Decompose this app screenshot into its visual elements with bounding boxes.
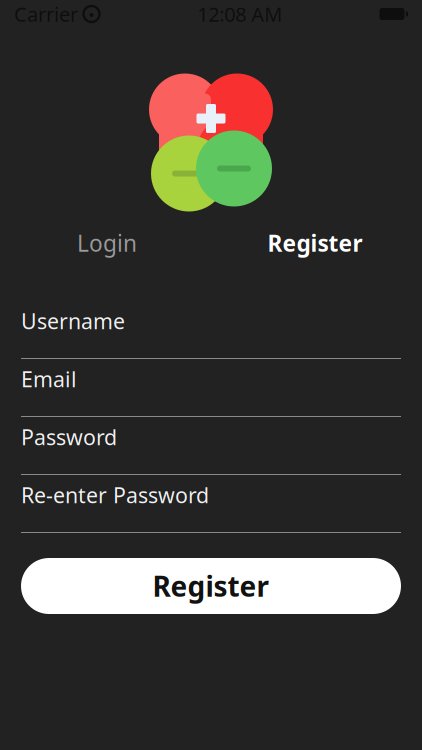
- staticText: Carrier: [14, 1, 78, 27]
- staticText: 12:08 AM: [197, 1, 282, 27]
- button[interactable]: Login: [37, 223, 177, 263]
- staticText: Login: [77, 228, 137, 258]
- button[interactable]: Email: [21, 359, 401, 417]
- button[interactable]: Register: [21, 558, 401, 614]
- button[interactable]: Username: [21, 301, 401, 359]
- staticText: Password: [21, 423, 117, 451]
- button[interactable]: Re-enter Password: [21, 475, 401, 533]
- staticText: Username: [21, 307, 125, 335]
- staticText: Email: [21, 365, 77, 393]
- button[interactable]: Register: [245, 223, 385, 263]
- button[interactable]: Password: [21, 417, 401, 475]
- staticText: Register: [152, 567, 269, 605]
- staticText: Re-enter Password: [21, 481, 209, 509]
- staticText: Register: [267, 228, 362, 258]
